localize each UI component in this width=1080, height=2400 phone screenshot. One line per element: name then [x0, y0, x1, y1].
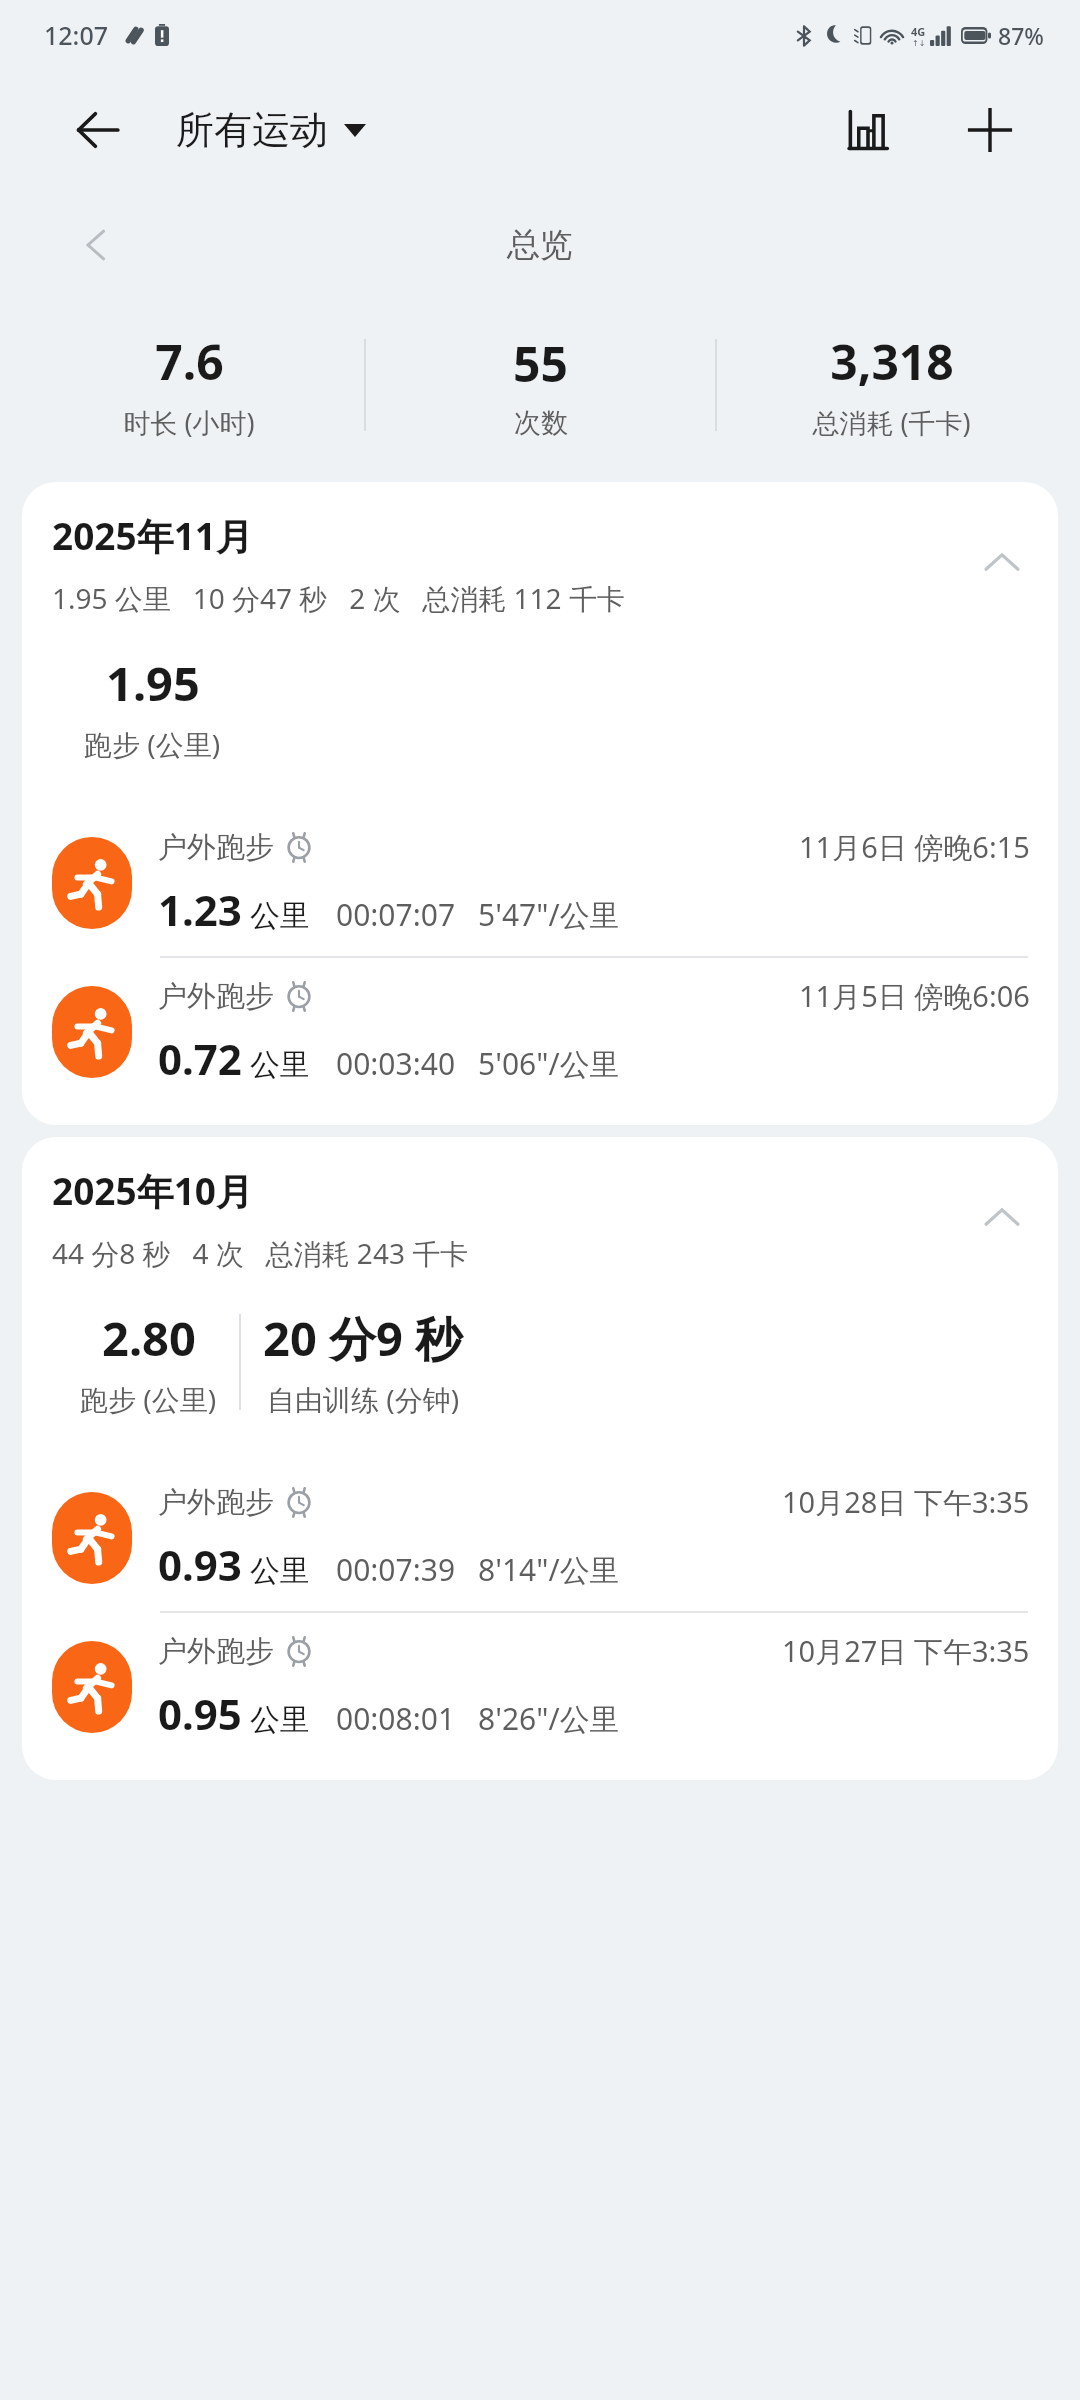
button[interactable]: 所有运动	[172, 100, 370, 160]
staticText: 自由训练 (分钟)	[267, 1380, 460, 1418]
staticText: 0.95	[158, 1685, 242, 1742]
staticText: 20 分9 秒	[263, 1306, 463, 1370]
button[interactable]: 55	[366, 327, 715, 444]
staticText: 00:08:01	[336, 1698, 456, 1739]
staticText: 户外跑步	[158, 978, 274, 1015]
staticText: 总览	[507, 224, 573, 266]
staticText: 0.72	[158, 1030, 242, 1087]
staticText: 2025年11月	[52, 510, 253, 561]
button[interactable]: Statistics	[828, 90, 908, 170]
staticText: 户外跑步	[158, 1484, 274, 1521]
staticText: 10月27日 下午3:35	[782, 1631, 1030, 1671]
staticText: 00:03:40	[336, 1043, 456, 1084]
button[interactable]: 2025年11月	[22, 482, 1058, 1125]
button[interactable]: 户外跑步	[22, 1613, 1058, 1760]
staticText: 跑步 (公里)	[84, 725, 221, 763]
button[interactable]: 3,318	[717, 325, 1066, 445]
staticText: 户外跑步	[158, 829, 274, 866]
button[interactable]: Add workout	[950, 90, 1030, 170]
staticText: 0.93	[158, 1536, 242, 1593]
staticText: 时长 (小时)	[123, 404, 255, 441]
staticText: 1.23	[158, 881, 242, 938]
staticText: 公里	[250, 897, 310, 935]
staticText: 1.95 公里 10 分47 秒 2 次 总消耗 112 千卡	[52, 579, 625, 617]
staticText: ↑↓	[912, 39, 926, 48]
staticText: 2.80	[102, 1306, 196, 1370]
staticText: 2025年10月	[52, 1165, 253, 1216]
button[interactable]: 2025年10月	[22, 1137, 1058, 1780]
staticText: 12:07	[44, 18, 109, 52]
button[interactable]: 户外跑步	[22, 1464, 1058, 1611]
staticText: 所有运动	[176, 106, 328, 154]
button[interactable]: Back	[62, 94, 134, 166]
button[interactable]: 户外跑步	[22, 958, 1058, 1105]
staticText: 5'47"/公里	[478, 894, 620, 935]
staticText: 55	[513, 331, 568, 396]
button[interactable]: 7.6	[14, 325, 364, 445]
button[interactable]: Collapse	[968, 1183, 1036, 1251]
staticText: 7.6	[155, 329, 224, 394]
staticText: 公里	[250, 1046, 310, 1084]
button[interactable]: Previous	[62, 210, 132, 280]
staticText: 8'26"/公里	[478, 1698, 620, 1739]
staticText: 跑步 (公里)	[80, 1380, 217, 1418]
staticText: 00:07:07	[336, 894, 456, 935]
staticText: 1.95	[106, 651, 200, 715]
staticText: 户外跑步	[158, 1633, 274, 1670]
staticText: 8'14"/公里	[478, 1549, 620, 1590]
staticText: 10月28日 下午3:35	[782, 1482, 1030, 1522]
button[interactable]: 户外跑步	[22, 809, 1058, 956]
staticText: 44 分8 秒 4 次 总消耗 243 千卡	[52, 1234, 469, 1272]
staticText: 3,318	[830, 329, 954, 394]
staticText: 公里	[250, 1701, 310, 1739]
staticText: 次数	[514, 406, 568, 440]
staticText: 公里	[250, 1552, 310, 1590]
staticText: 总消耗 (千卡)	[812, 404, 971, 441]
staticText: 5'06"/公里	[478, 1043, 620, 1084]
button[interactable]: Collapse	[968, 528, 1036, 596]
staticText: 4G	[911, 24, 926, 39]
staticText: 87%	[998, 20, 1044, 51]
staticText: 11月6日 傍晚6:15	[799, 827, 1030, 867]
staticText: 11月5日 傍晚6:06	[799, 976, 1030, 1016]
staticText: 00:07:39	[336, 1549, 456, 1590]
